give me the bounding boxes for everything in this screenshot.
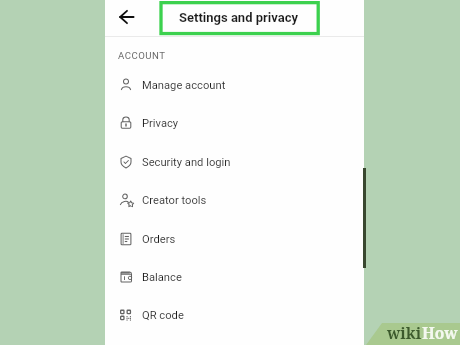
- staticText: Orders: [142, 233, 176, 246]
- staticText: Privacy: [142, 117, 179, 130]
- staticText: Settings and privacy: [179, 10, 298, 25]
- staticText: Security and login: [142, 156, 231, 169]
- button[interactable]: Back: [113, 4, 139, 30]
- staticText: QR code: [142, 309, 184, 322]
- staticText: wiki: [387, 322, 422, 343]
- staticText: Creator tools: [142, 194, 207, 207]
- staticText: ACCOUNT: [118, 50, 166, 61]
- button[interactable]: Manage account: [105, 66, 364, 104]
- staticText: Balance: [142, 271, 182, 284]
- button[interactable]: Orders: [105, 220, 364, 258]
- staticText: How: [422, 322, 458, 343]
- button[interactable]: Balance: [105, 258, 364, 296]
- button[interactable]: Privacy: [105, 104, 364, 142]
- button[interactable]: QR code: [105, 296, 364, 334]
- button[interactable]: Security and login: [105, 143, 364, 181]
- staticText: Manage account: [142, 79, 226, 92]
- button[interactable]: Creator tools: [105, 181, 364, 219]
